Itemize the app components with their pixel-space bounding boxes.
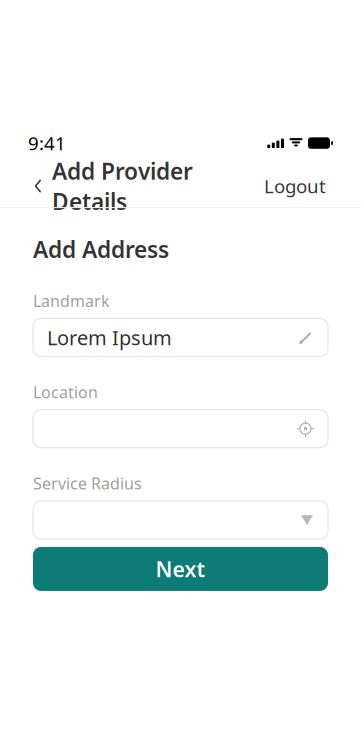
button[interactable]: [33, 410, 328, 448]
staticText: Logout: [264, 174, 326, 198]
staticText: Add Provider Details: [52, 156, 193, 216]
staticText: Service Radius: [33, 473, 142, 494]
staticText: Landmark: [33, 290, 110, 311]
button[interactable]: Next: [33, 547, 328, 591]
button[interactable]: Logout: [262, 168, 328, 204]
staticText: 9:41: [28, 131, 66, 155]
staticText: Add Address: [33, 234, 169, 264]
staticText: Next: [155, 555, 205, 583]
button[interactable]: Lorem Ipsum: [33, 318, 328, 356]
button[interactable]: Add Provider Details: [33, 150, 193, 222]
button[interactable]: [33, 501, 328, 539]
staticText: Location: [33, 381, 98, 403]
staticText: Lorem Ipsum: [47, 324, 172, 351]
